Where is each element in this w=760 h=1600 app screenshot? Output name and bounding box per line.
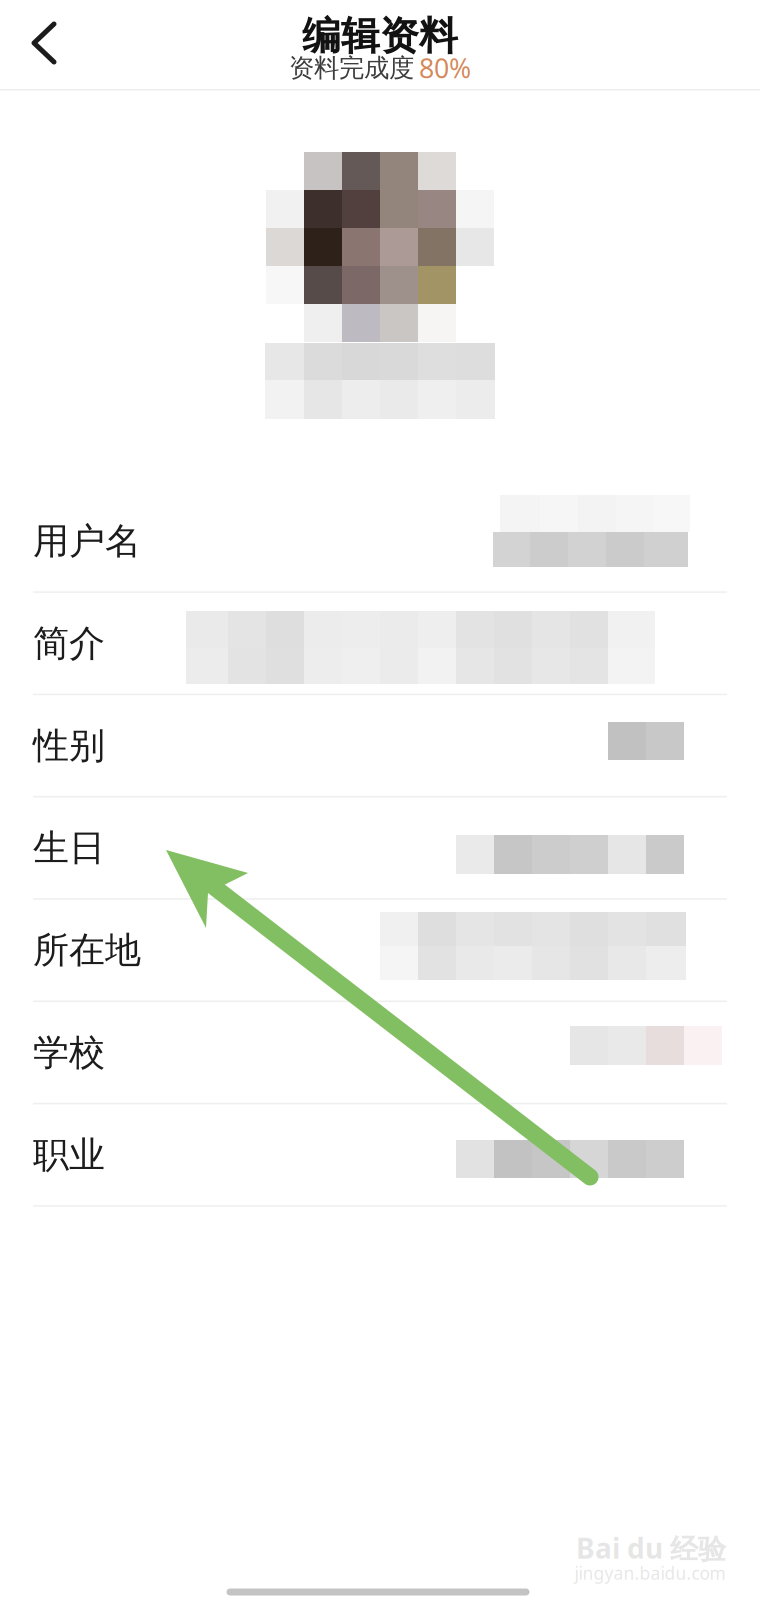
button[interactable]: Back (0, 3, 90, 83)
staticText: 生日 (33, 826, 105, 870)
staticText: 学校 (33, 1030, 105, 1075)
button[interactable]: 学校 (0, 1001, 760, 1104)
button[interactable]: 所在地 (0, 899, 760, 1001)
button[interactable]: 性别 (0, 695, 760, 797)
button[interactable]: 用户名 (0, 490, 760, 592)
staticText: 资料完成度 (289, 52, 414, 83)
button[interactable]: 生日 (0, 797, 760, 899)
staticText: 编辑资料 (302, 12, 458, 60)
staticText: 所在地 (33, 928, 141, 972)
button[interactable]: 职业 (0, 1104, 760, 1206)
staticText: 用户名 (33, 519, 141, 563)
staticText: 性别 (33, 724, 105, 768)
staticText: 80% (419, 50, 471, 86)
staticText: 简介 (33, 621, 105, 665)
staticText: 职业 (33, 1133, 105, 1177)
staticText: Bai du 经验 (576, 1529, 726, 1567)
button[interactable]: 简介 (0, 592, 760, 695)
staticText: jingyan.baidu.com (574, 1561, 725, 1584)
